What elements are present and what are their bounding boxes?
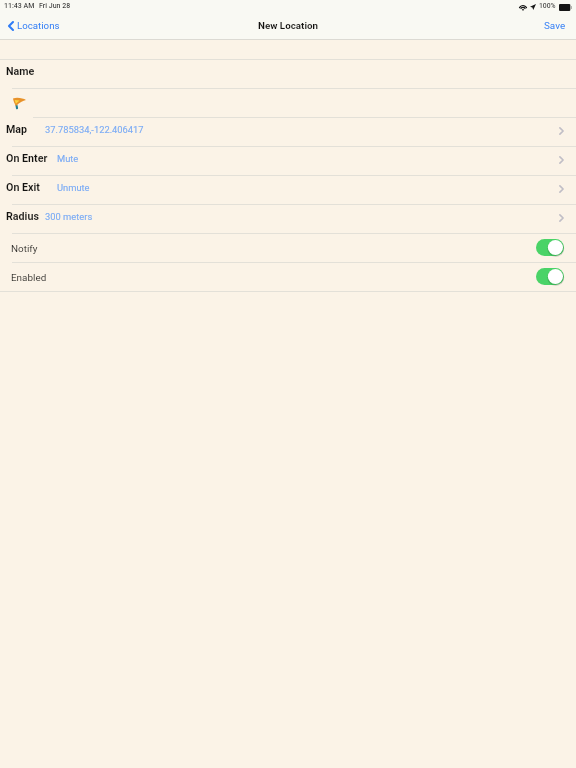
staticText: Mute xyxy=(57,153,79,164)
button[interactable]: Map xyxy=(0,117,576,146)
button[interactable]: Locations xyxy=(2,16,64,39)
staticText: Unmute xyxy=(57,182,90,193)
button[interactable]: Notify, on xyxy=(536,239,564,256)
staticText: Fri Jun 28 xyxy=(39,2,71,10)
button[interactable]: Radius xyxy=(0,204,576,233)
button[interactable]: Save xyxy=(534,16,572,39)
staticText: Enabled xyxy=(11,272,47,284)
other: Wi-Fi xyxy=(519,4,527,10)
other: Flag xyxy=(12,97,26,109)
button[interactable]: Name xyxy=(0,59,576,88)
staticText: 37.785834,-122.406417 xyxy=(45,124,144,135)
staticText: On Exit xyxy=(6,181,40,194)
staticText: 100% xyxy=(539,2,556,10)
staticText: 11:43 AM xyxy=(4,2,35,10)
staticText: Save xyxy=(544,20,566,32)
button[interactable]: Notify xyxy=(0,233,576,262)
staticText: Radius xyxy=(6,210,39,223)
staticText: 300 meters xyxy=(45,211,93,222)
button[interactable]: Flag xyxy=(0,88,576,117)
staticText: Map xyxy=(6,123,28,136)
button[interactable]: On Enter xyxy=(0,146,576,175)
button[interactable]: Enabled xyxy=(0,262,576,291)
button[interactable]: Enabled, on xyxy=(536,268,564,285)
button[interactable]: On Exit xyxy=(0,175,576,204)
other: Location xyxy=(530,4,536,10)
staticText: Notify xyxy=(11,243,38,255)
staticText: New Location xyxy=(258,20,319,31)
other: Battery full xyxy=(559,4,572,11)
staticText: Name xyxy=(6,65,35,78)
staticText: On Enter xyxy=(6,152,48,165)
staticText: Locations xyxy=(17,20,60,31)
